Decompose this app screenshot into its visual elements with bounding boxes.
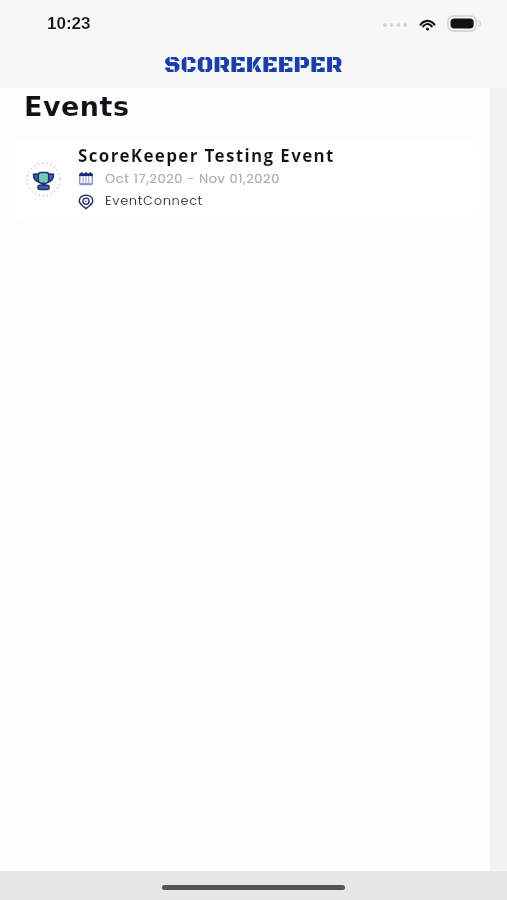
staticText: SCOREKEEPER	[164, 51, 343, 80]
staticText: Oct 17,2020 - Nov 01,2020	[105, 169, 280, 187]
staticText: 10:23	[47, 14, 91, 33]
staticText: EventConnect	[105, 191, 203, 209]
staticText: Events	[24, 91, 130, 122]
staticText: ScoreKeeper Testing Event	[78, 144, 335, 167]
button[interactable]: ScoreKeeper Testing Event	[11, 141, 479, 220]
